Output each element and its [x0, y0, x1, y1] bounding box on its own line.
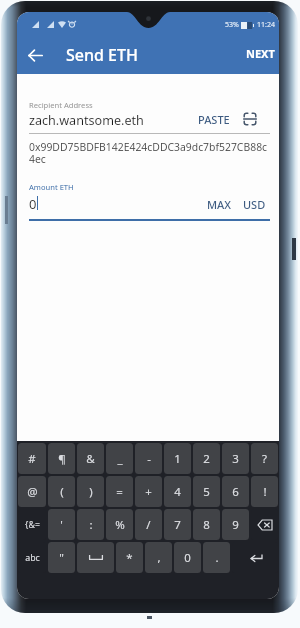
- staticText: .: [215, 550, 219, 566]
- staticText: +: [145, 484, 152, 500]
- button[interactable]: +: [135, 476, 162, 507]
- staticText: @: [27, 484, 38, 500]
- button[interactable]: #: [18, 443, 46, 474]
- button[interactable]: abc: [18, 542, 46, 573]
- button[interactable]: ): [77, 476, 104, 507]
- button[interactable]: 1: [164, 443, 191, 474]
- button[interactable]: MAX: [204, 193, 235, 216]
- staticText: USD: [243, 197, 266, 212]
- staticText: _: [117, 451, 123, 467]
- staticText: Recipient Address: [29, 100, 93, 110]
- button[interactable]: *: [116, 542, 143, 573]
- staticText: (: [60, 484, 64, 500]
- button[interactable]: 2: [193, 443, 220, 474]
- button[interactable]: ¶: [48, 443, 75, 474]
- staticText: 0: [29, 195, 37, 213]
- staticText: 1: [174, 451, 181, 467]
- staticText: PASTE: [198, 112, 230, 127]
- button[interactable]: %: [106, 509, 133, 540]
- staticText: 0x99DD75BDFB142E424cDDC3a9dc7bf527CB88c4…: [29, 140, 271, 166]
- button[interactable]: /: [135, 509, 162, 540]
- staticText: ,: [157, 550, 161, 566]
- button[interactable]: ": [48, 542, 75, 573]
- button[interactable]: -: [135, 443, 162, 474]
- button[interactable]: Scan QR code: [241, 110, 259, 128]
- staticText: zach.wantsome.eth: [29, 112, 144, 129]
- button[interactable]: {&=: [18, 509, 46, 540]
- staticText: ): [89, 484, 93, 500]
- button[interactable]: PASTE: [195, 108, 233, 131]
- button[interactable]: _: [106, 443, 133, 474]
- staticText: NEXT: [246, 46, 275, 61]
- staticText: 5: [203, 484, 210, 500]
- staticText: 8: [203, 517, 210, 533]
- button[interactable]: Delete: [251, 509, 278, 540]
- staticText: MAX: [207, 197, 232, 212]
- button[interactable]: :: [77, 509, 104, 540]
- button[interactable]: Space: [77, 542, 114, 573]
- staticText: :: [89, 517, 93, 533]
- button[interactable]: 5: [193, 476, 220, 507]
- button[interactable]: !: [251, 476, 278, 507]
- button[interactable]: 9: [222, 509, 249, 540]
- staticText: 6: [232, 484, 239, 500]
- button[interactable]: 0: [174, 542, 201, 573]
- button[interactable]: 3: [222, 443, 249, 474]
- staticText: {&=: [25, 519, 40, 531]
- button[interactable]: @: [18, 476, 46, 507]
- staticText: Amount ETH: [29, 182, 74, 192]
- staticText: #: [28, 451, 36, 467]
- staticText: !: [263, 484, 267, 500]
- staticText: 2: [203, 451, 210, 467]
- button[interactable]: 6: [222, 476, 249, 507]
- staticText: abc: [25, 552, 40, 564]
- button[interactable]: (: [48, 476, 75, 507]
- button[interactable]: &: [77, 443, 104, 474]
- staticText: /: [146, 517, 151, 533]
- button[interactable]: 8: [193, 509, 220, 540]
- button[interactable]: ': [48, 509, 75, 540]
- staticText: ': [60, 517, 63, 533]
- staticText: 11:24: [257, 20, 275, 30]
- button[interactable]: 7: [164, 509, 191, 540]
- staticText: &: [86, 451, 95, 467]
- staticText: 4: [174, 484, 181, 500]
- button[interactable]: Back: [17, 37, 53, 73]
- staticText: 53%: [225, 20, 239, 30]
- button[interactable]: Enter: [232, 542, 278, 573]
- staticText: %: [115, 517, 125, 533]
- staticText: =: [116, 484, 123, 500]
- staticText: 3: [232, 451, 239, 467]
- staticText: 7: [174, 517, 181, 533]
- button[interactable]: =: [106, 476, 133, 507]
- staticText: ¶: [58, 451, 66, 467]
- button[interactable]: USD: [240, 193, 269, 216]
- staticText: 0: [184, 550, 191, 566]
- button[interactable]: ,: [145, 542, 172, 573]
- staticText: ?: [262, 451, 267, 467]
- staticText: -: [147, 451, 151, 467]
- button[interactable]: ?: [251, 443, 278, 474]
- staticText: *: [126, 550, 133, 566]
- staticText: Send ETH: [66, 44, 138, 66]
- button[interactable]: 4: [164, 476, 191, 507]
- button[interactable]: NEXT: [236, 36, 279, 71]
- staticText: 9: [232, 517, 239, 533]
- staticText: ": [59, 550, 64, 566]
- button[interactable]: .: [203, 542, 230, 573]
